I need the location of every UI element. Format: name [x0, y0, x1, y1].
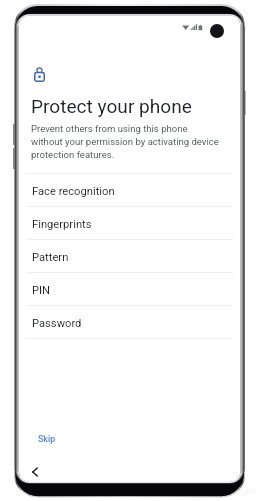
button[interactable]: Back	[27, 464, 43, 480]
staticText: PIN	[32, 284, 51, 297]
button[interactable]: Password	[27, 306, 233, 338]
staticText: Password	[32, 317, 82, 330]
button[interactable]: Pattern	[27, 240, 233, 272]
staticText: Fingerprints	[32, 218, 92, 231]
staticText: Prevent others from using this phone wit…	[31, 123, 219, 161]
staticText: Face recognition	[32, 185, 115, 198]
button[interactable]: PIN	[27, 273, 233, 305]
button[interactable]: Face recognition	[27, 174, 233, 206]
staticText: Skip	[38, 434, 56, 444]
button[interactable]: Fingerprints	[27, 207, 233, 239]
staticText: www.sample.com	[176, 486, 256, 498]
staticText: Protect your phone	[31, 95, 192, 117]
button[interactable]: Skip	[32, 429, 62, 449]
staticText: Pattern	[32, 251, 69, 264]
